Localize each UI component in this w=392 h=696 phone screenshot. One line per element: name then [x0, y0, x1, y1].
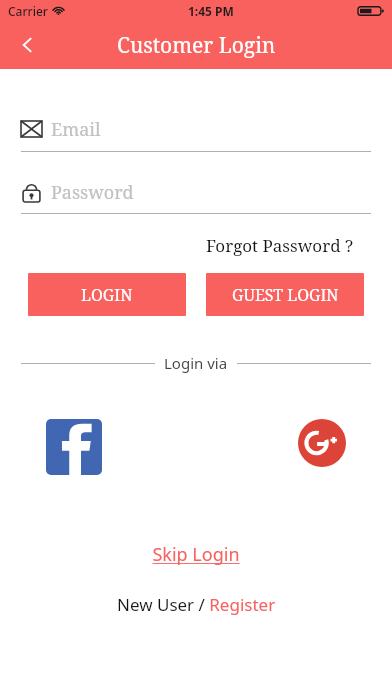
staticText: Password — [51, 180, 134, 205]
button[interactable]: GUEST LOGIN — [206, 273, 364, 316]
button[interactable]: Forgot Password ? — [204, 232, 356, 259]
button[interactable]: Skip Login — [146, 540, 246, 569]
button[interactable]: Login with Google Plus — [298, 419, 346, 467]
staticText: Login via — [164, 353, 228, 373]
button[interactable]: Back — [8, 25, 48, 65]
staticText: LOGIN — [81, 284, 133, 306]
button[interactable]: LOGIN — [28, 273, 186, 316]
staticText: Forgot Password ? — [206, 234, 354, 257]
button[interactable]: Login with Facebook — [46, 419, 102, 475]
staticText: 1:45 PM — [188, 3, 234, 19]
staticText: Customer Login — [117, 31, 276, 60]
staticText: GUEST LOGIN — [232, 284, 339, 306]
staticText: New User / Register — [117, 593, 276, 616]
staticText: Skip Login — [152, 542, 240, 567]
button[interactable]: New User / Register — [111, 591, 282, 618]
staticText: Email — [51, 117, 101, 142]
staticText: Carrier — [8, 3, 48, 19]
